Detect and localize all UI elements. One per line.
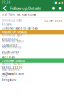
button[interactable]: Back (1, 5, 8, 12)
button[interactable]: More options (58, 5, 63, 12)
button[interactable]: Search (51, 5, 56, 12)
staticText: Mobile Number (2, 62, 24, 65)
staticText: 98765 43210 (2, 66, 23, 70)
staticText: City (2, 74, 7, 77)
staticText: Telephonic (2, 38, 18, 41)
staticText: Email Address (2, 68, 20, 71)
staticText: FOLLOW UP DETAILS (2, 30, 27, 34)
staticText: Follow up Date (2, 19, 23, 22)
staticText: 10:24 (1, 1, 10, 4)
staticText: ravi@example.com (2, 72, 24, 76)
staticText: Customer asked to call back (2, 27, 38, 30)
staticText: Sales Team (2, 56, 15, 59)
staticText: ■ ▲ ▮ (55, 1, 63, 4)
staticText: Bengaluru (2, 78, 17, 82)
staticText: 28 Jan 2024 (2, 50, 20, 53)
staticText: Follow up Details (10, 6, 41, 11)
staticText: Assigned To (2, 52, 19, 55)
staticText: Completed (2, 44, 18, 47)
staticText: Remarks (2, 23, 12, 26)
staticText: 22 Jan 2024 (44, 19, 62, 22)
staticText: Follow up Status (2, 40, 24, 43)
staticText: Mr. Ravi Kumar (17, 13, 36, 16)
staticText: CUSTOMER DETAILS (2, 59, 25, 62)
staticText: Next Follow up (2, 46, 22, 49)
staticText: Lead Name (2, 13, 16, 16)
staticText: Follow up Type (2, 34, 23, 37)
